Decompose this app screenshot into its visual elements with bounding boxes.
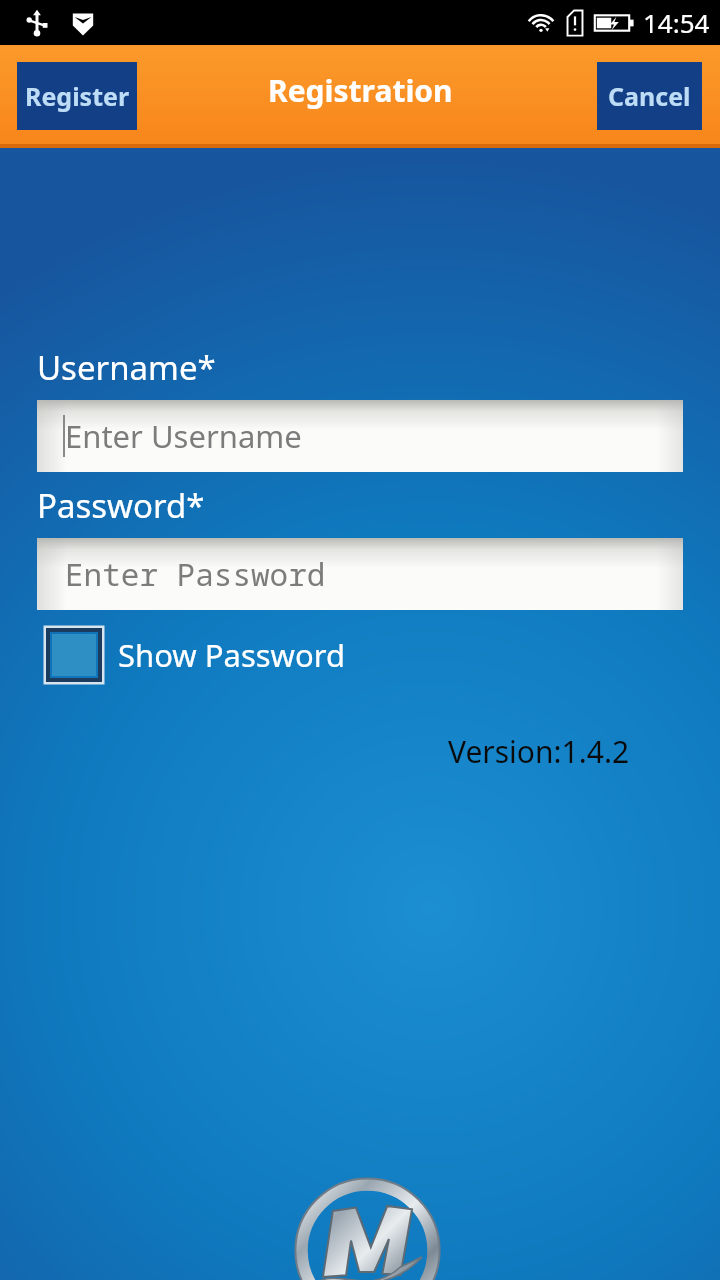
- button[interactable]: Show Password: [45, 627, 345, 683]
- staticText: Show Password: [118, 634, 345, 676]
- button[interactable]: Enter Password: [37, 538, 683, 610]
- staticText: Registration: [268, 70, 453, 111]
- staticText: Register: [25, 79, 130, 113]
- staticText: Enter Password: [65, 553, 326, 595]
- button[interactable]: Cancel: [597, 62, 702, 130]
- button[interactable]: Register: [17, 62, 137, 130]
- staticText: Username*: [37, 345, 216, 390]
- staticText: Password*: [37, 483, 205, 528]
- staticText: Version:1.4.2: [448, 731, 630, 772]
- staticText: 14:54: [643, 5, 710, 40]
- staticText: Cancel: [608, 79, 691, 113]
- staticText: Enter Username: [65, 415, 302, 457]
- button[interactable]: Enter Username: [37, 400, 683, 472]
